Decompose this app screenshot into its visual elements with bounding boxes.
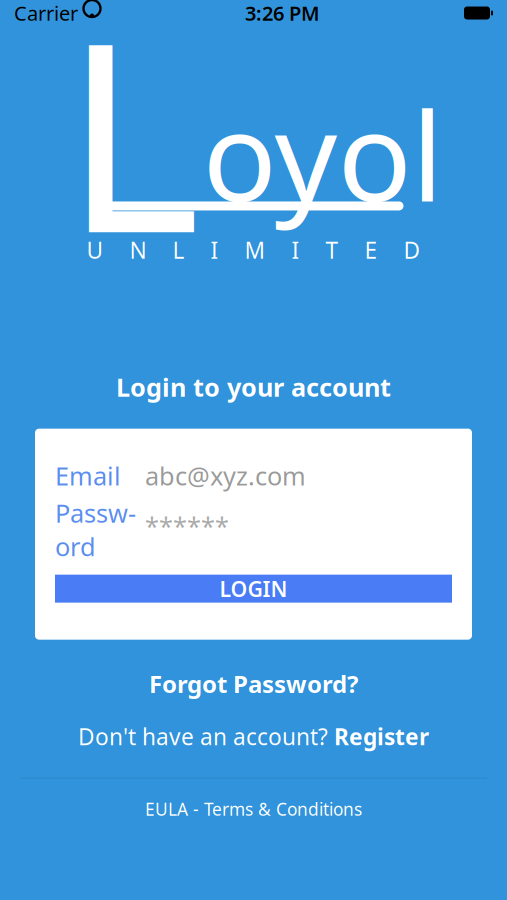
staticText: LOGIN: [219, 574, 287, 603]
staticText: T: [325, 235, 338, 265]
staticText: U: [86, 235, 103, 265]
staticText: I: [210, 235, 218, 265]
staticText: 3:26 PM: [245, 0, 320, 26]
staticText: [78, 1, 83, 24]
button[interactable]: LOGIN: [55, 575, 452, 603]
staticText: M: [244, 235, 265, 265]
staticText: oyol: [202, 72, 443, 235]
staticText: Forgot Password?: [149, 668, 358, 699]
button[interactable]: EULA - Terms & Conditions: [131, 793, 376, 826]
button[interactable]: Forgot Password?: [133, 662, 374, 705]
staticText: L: [172, 235, 184, 265]
staticText: Carrier: [14, 0, 78, 26]
staticText: Login to your account: [116, 370, 391, 404]
staticText: E: [364, 235, 377, 265]
staticText: ******: [145, 509, 229, 542]
staticText: Don't have an account?: [78, 721, 334, 752]
staticText: N: [129, 235, 146, 265]
staticText: Register: [334, 721, 429, 752]
staticText: Email: [55, 459, 121, 492]
staticText: L: [63, 0, 200, 304]
staticText: Password: [55, 496, 136, 563]
staticText: D: [403, 235, 420, 265]
staticText: I: [291, 235, 299, 265]
staticText: EULA - Terms & Conditions: [145, 798, 362, 821]
button[interactable]: Don't have an account?: [62, 715, 445, 758]
staticText: abc@xyz.com: [145, 459, 306, 492]
